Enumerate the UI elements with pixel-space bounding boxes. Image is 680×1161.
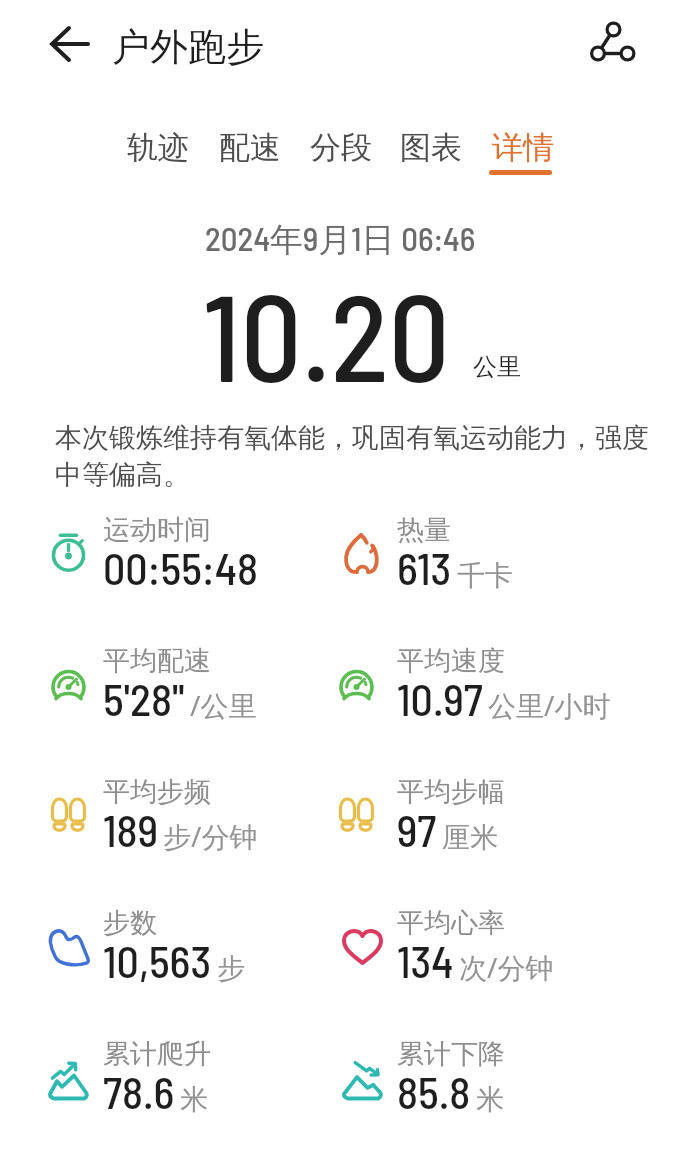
staticText: 热量	[397, 513, 451, 547]
staticText: 公里/小时	[488, 686, 611, 724]
staticText: 次/分钟	[459, 948, 554, 986]
staticText: 米	[180, 1082, 208, 1117]
staticText: 10.97	[397, 672, 483, 725]
staticText: 累计爬升	[103, 1037, 211, 1071]
button[interactable]: 轨迹	[120, 119, 196, 175]
staticText: 轨迹	[127, 128, 189, 167]
button[interactable]	[44, 20, 92, 68]
staticText: 5'28''	[103, 672, 185, 725]
staticText: 分段	[310, 128, 372, 167]
staticText: 平均步频	[103, 775, 211, 809]
staticText: 详情	[492, 128, 554, 167]
staticText: 00:55:48	[103, 541, 258, 594]
staticText: 134	[397, 934, 454, 987]
staticText: 10,563	[103, 934, 212, 987]
staticText: 97	[397, 803, 437, 856]
staticText: 85.8	[397, 1065, 471, 1118]
staticText: 千卡	[457, 558, 513, 593]
staticText: 78.6	[103, 1065, 175, 1118]
staticText: 步	[217, 951, 245, 986]
staticText: 613	[397, 541, 452, 594]
staticText: 平均心率	[397, 906, 505, 940]
staticText: 平均速度	[397, 644, 505, 678]
staticText: 公里	[473, 352, 521, 382]
staticText: 运动时间	[103, 513, 211, 547]
button[interactable]: 详情	[485, 119, 561, 175]
staticText: 2024年9月1日 06:46	[205, 218, 476, 261]
button[interactable]: 配速	[212, 119, 288, 175]
staticText: 米	[476, 1082, 504, 1117]
staticText: 厘米	[442, 820, 498, 855]
staticText: 平均配速	[103, 644, 211, 678]
staticText: 步数	[103, 906, 157, 940]
button[interactable]: 分段	[303, 119, 379, 175]
staticText: 累计下降	[397, 1037, 505, 1071]
button[interactable]	[584, 14, 640, 70]
staticText: 步/分钟	[163, 817, 258, 855]
staticText: 图表	[400, 128, 462, 167]
staticText: /公里	[190, 686, 257, 724]
staticText: 本次锻炼维持有氧体能，巩固有氧运动能力，强度中等偏高。	[55, 421, 655, 492]
staticText: 10.20	[203, 261, 450, 406]
staticText: 平均步幅	[397, 775, 505, 809]
staticText: 户外跑步	[112, 23, 264, 71]
button[interactable]: 图表	[393, 119, 469, 175]
staticText: 配速	[219, 128, 281, 167]
staticText: 189	[103, 803, 158, 856]
